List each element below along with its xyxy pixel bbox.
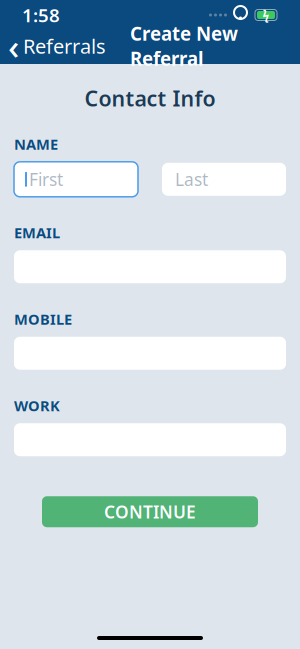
button[interactable]: Last: [162, 163, 286, 196]
button[interactable]: CONTINUE: [42, 496, 258, 527]
staticText: EMAIL: [14, 223, 60, 242]
staticText: Contact Info: [84, 84, 215, 112]
staticText: CONTINUE: [104, 500, 196, 523]
staticText: WORK: [14, 396, 60, 415]
staticText: First: [29, 168, 63, 191]
button[interactable]: First: [14, 162, 138, 197]
staticText: 1:58: [22, 3, 60, 27]
staticText: ϟ: [262, 7, 269, 23]
staticText: MOBILE: [14, 309, 72, 329]
staticText: ‹: [8, 23, 19, 69]
staticText: NAME: [14, 134, 58, 154]
staticText: Last: [175, 168, 208, 191]
staticText: Referrals: [23, 33, 106, 59]
button[interactable]: ‹: [0, 30, 112, 62]
staticText: Create New Referral: [130, 21, 238, 71]
